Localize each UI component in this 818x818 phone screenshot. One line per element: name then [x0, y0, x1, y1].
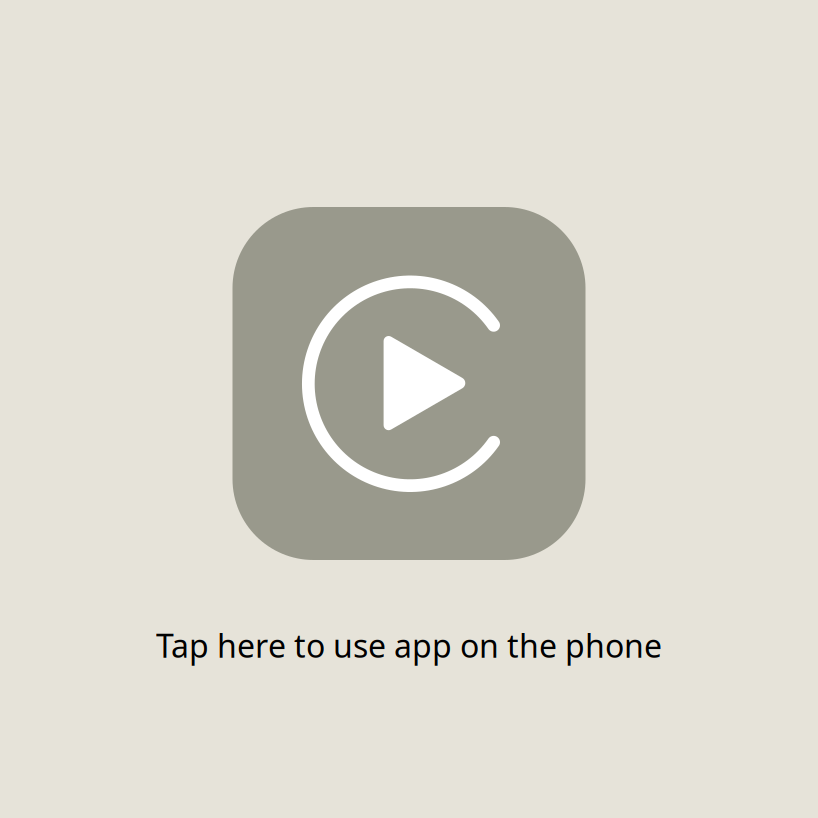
button[interactable]: Tap here to use app on the phone: [0, 207, 818, 666]
staticText: Tap here to use app on the phone: [156, 624, 662, 666]
